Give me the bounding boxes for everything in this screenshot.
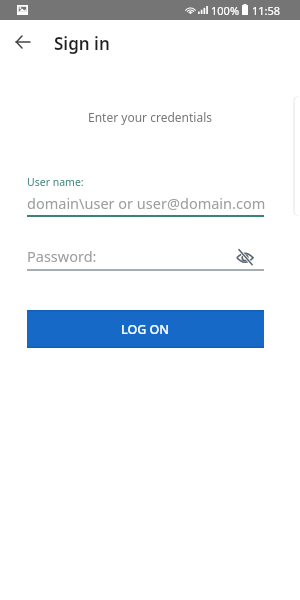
staticText: Enter your credentials: [0, 109, 300, 125]
staticText: Sign in: [54, 32, 110, 55]
button[interactable]: Show password: [236, 247, 254, 265]
staticText: LOG ON: [121, 321, 170, 338]
staticText: 100%: [211, 3, 240, 18]
button[interactable]: LOG ON: [27, 310, 264, 348]
staticText: Password:: [27, 246, 97, 266]
staticText: User name:: [27, 175, 84, 189]
staticText: 11:58: [252, 3, 281, 18]
staticText: domain\user or user@domain.com: [27, 193, 266, 213]
button[interactable]: Back: [5, 24, 41, 60]
